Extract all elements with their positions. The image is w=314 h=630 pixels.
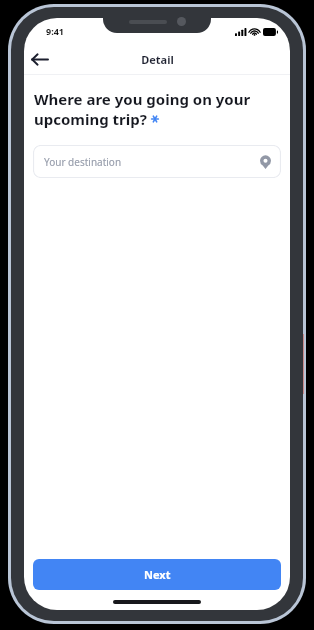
button[interactable]: Next (33, 559, 281, 590)
button[interactable]: Your destination (33, 145, 281, 178)
staticText: Next (144, 567, 171, 582)
staticText: Where are you going on your upcoming tri… (34, 89, 251, 129)
staticText: Your destination (44, 155, 122, 169)
staticText: Detail (141, 52, 174, 67)
button[interactable]: Pick location (256, 153, 274, 171)
button[interactable]: Back (24, 44, 54, 74)
staticText: 9:41 (46, 25, 64, 37)
